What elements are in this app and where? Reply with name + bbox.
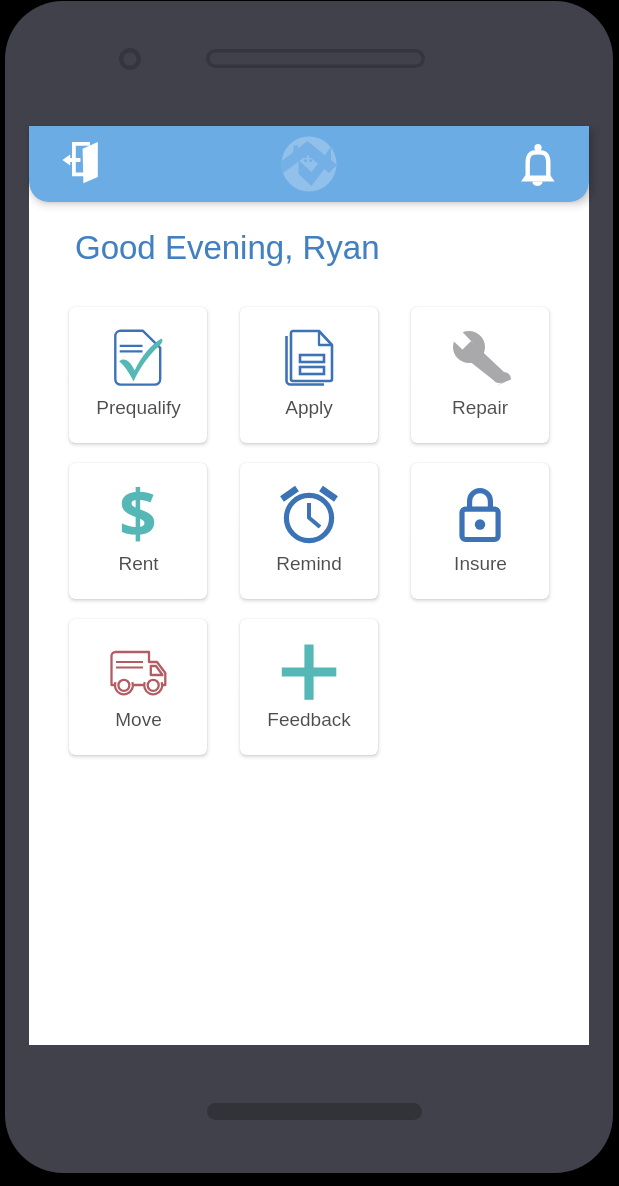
button[interactable]: Move [69, 619, 207, 755]
staticText: Move [115, 709, 162, 730]
button[interactable]: Insure [411, 463, 549, 599]
staticText: Remind [276, 553, 342, 574]
button[interactable]: Notifications [515, 138, 567, 190]
button[interactable]: $ [69, 463, 207, 599]
staticText: Insure [454, 553, 507, 574]
staticText: Repair [452, 397, 508, 418]
staticText: Feedback [267, 709, 351, 730]
button[interactable]: Apply [240, 307, 378, 443]
button[interactable]: Remind [240, 463, 378, 599]
staticText: $ [119, 467, 157, 557]
staticText: Good Evening, Ryan [75, 229, 380, 266]
button[interactable]: Log out [53, 138, 105, 190]
staticText: Prequalify [96, 397, 181, 418]
button[interactable]: Prequalify [69, 307, 207, 443]
button[interactable]: Feedback [240, 619, 378, 755]
staticText: Apply [285, 397, 333, 418]
button[interactable]: Repair [411, 307, 549, 443]
staticText: Rent [118, 553, 159, 574]
